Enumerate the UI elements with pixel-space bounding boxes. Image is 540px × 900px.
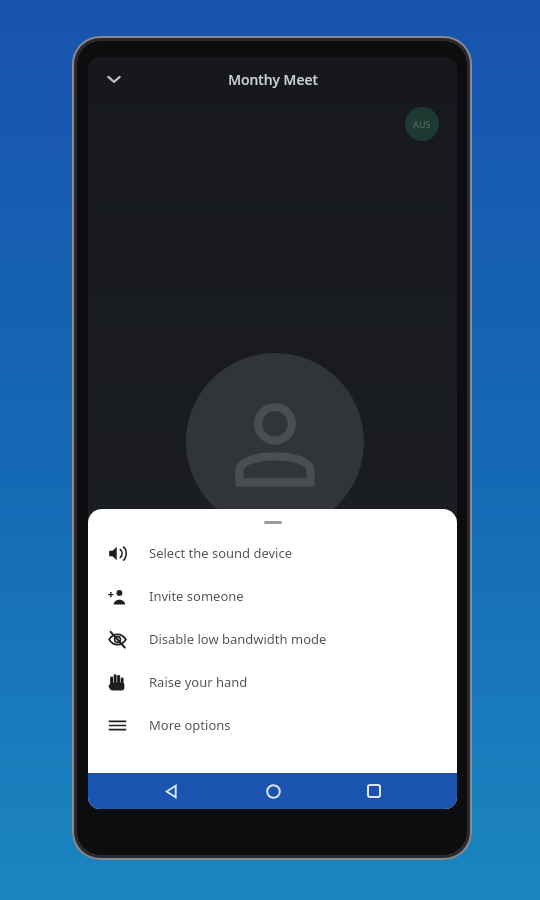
button[interactable]: Recents [356, 773, 392, 809]
button[interactable]: Back [153, 773, 189, 809]
button[interactable]: Minimize [94, 59, 134, 99]
staticText: Raise your hand [149, 673, 248, 691]
button[interactable]: More options [88, 703, 457, 746]
button[interactable]: Invite someone [88, 574, 457, 617]
staticText: More options [149, 716, 231, 734]
button[interactable]: Select the sound device [88, 531, 457, 574]
button[interactable]: Raise your hand [88, 660, 457, 703]
button[interactable]: Disable low bandwidth mode [88, 617, 457, 660]
button[interactable]: Participant AUS [405, 107, 439, 141]
staticText: Disable low bandwidth mode [149, 630, 327, 648]
staticText: Select the sound device [149, 544, 293, 562]
staticText: Monthy Meet [228, 70, 318, 89]
staticText: Invite someone [149, 587, 244, 605]
staticText: AUS [413, 118, 431, 130]
button[interactable]: Home [255, 773, 291, 809]
